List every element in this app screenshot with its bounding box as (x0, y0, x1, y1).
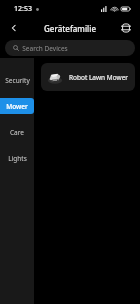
staticText: Search Devices (22, 44, 68, 53)
staticText: Care (10, 128, 24, 137)
staticText: 12:53 (14, 4, 32, 14)
button[interactable]: Search Devices (5, 40, 135, 56)
staticText: Lights (8, 154, 27, 163)
button[interactable]: Security (0, 72, 34, 88)
button[interactable]: Lights (0, 150, 34, 166)
button[interactable]: Robot Lawn Mower (41, 63, 135, 91)
staticText: Mower (6, 102, 28, 111)
button[interactable]: Care (0, 124, 34, 140)
staticText: Security (5, 76, 30, 85)
staticText: Robot Lawn Mower (69, 73, 128, 82)
staticText: Gerätefamilie (44, 23, 96, 34)
button[interactable]: Mower (0, 98, 34, 114)
button[interactable]: Back (5, 19, 23, 37)
button[interactable]: Add device (117, 19, 135, 37)
